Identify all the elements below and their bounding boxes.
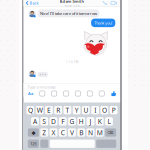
button[interactable]: F: [59, 117, 67, 125]
staticText: E: [47, 106, 51, 115]
button[interactable]: Stickers: [63, 90, 69, 97]
staticText: Y: [75, 106, 79, 115]
staticText: ⌫: [108, 130, 114, 135]
button[interactable]: C: [59, 128, 67, 137]
button[interactable]: D: [50, 117, 57, 125]
staticText: Q: [28, 106, 33, 115]
button[interactable]: Audio: [86, 90, 93, 97]
staticText: H: [79, 117, 84, 126]
staticText: Nice! I'll take care of it tomorrow: [40, 11, 97, 16]
staticText: K: [98, 117, 102, 126]
button[interactable]: W: [36, 106, 43, 114]
button[interactable]: M: [96, 128, 104, 137]
staticText: Aa: [28, 91, 33, 96]
staticText: P: [112, 106, 116, 115]
staticText: Adam Smith: [59, 0, 84, 4]
staticText: R: [56, 106, 60, 115]
button[interactable]: Camera: [39, 90, 46, 97]
staticText: 1:14 PM: [66, 60, 78, 64]
staticText: U: [83, 106, 88, 115]
staticText: M: [97, 128, 103, 137]
staticText: F: [61, 117, 64, 126]
button[interactable]: [40, 140, 48, 148]
button[interactable]: P: [110, 106, 117, 114]
button[interactable]: More: [98, 90, 105, 97]
button[interactable]: G: [68, 117, 76, 125]
button[interactable]: U: [82, 106, 90, 114]
staticText: S: [42, 117, 46, 126]
staticText: ◆: [31, 129, 35, 136]
staticText: N: [88, 128, 93, 137]
staticText: B: [79, 128, 83, 137]
staticText: V: [70, 128, 74, 137]
button[interactable]: K: [96, 117, 104, 125]
button[interactable]: O: [100, 106, 108, 114]
button[interactable]: 123: [28, 140, 39, 148]
staticText: D: [51, 117, 56, 126]
staticText: L: [107, 117, 110, 126]
button[interactable]: N: [87, 128, 94, 137]
button[interactable]: Y: [73, 106, 80, 114]
button[interactable]: Z: [40, 128, 48, 137]
button[interactable]: V: [68, 128, 76, 137]
staticText: Type a message: [27, 84, 55, 89]
staticText: Thank you!: [94, 20, 112, 25]
button[interactable]: T: [63, 106, 71, 114]
staticText: G: [69, 117, 74, 126]
button[interactable]: [50, 140, 95, 148]
button[interactable]: E: [45, 106, 53, 114]
staticText: Z: [42, 128, 46, 137]
button[interactable]: J: [87, 117, 94, 125]
button[interactable]: Q: [26, 106, 34, 114]
button[interactable]: S: [40, 117, 48, 125]
button[interactable]: B: [77, 128, 85, 137]
staticText: X: [51, 128, 55, 137]
staticText: Active now: [64, 4, 79, 7]
button[interactable]: I: [91, 106, 99, 114]
staticText: T: [65, 106, 69, 115]
staticText: 123: [30, 141, 36, 146]
button[interactable]: Call: [102, 0, 108, 6]
staticText: A: [33, 117, 37, 126]
button[interactable]: Like: [110, 90, 117, 97]
button[interactable]: Photos: [51, 90, 57, 97]
button[interactable]: A: [31, 117, 39, 125]
staticText: I: [94, 106, 96, 115]
staticText: W: [37, 106, 43, 115]
staticText: O: [102, 106, 107, 115]
button[interactable]: H: [77, 117, 85, 125]
button[interactable]: FaceTime: [111, 0, 117, 6]
button[interactable]: ⌫: [105, 128, 116, 137]
button[interactable]: Aa: [27, 90, 34, 97]
button[interactable]: Back: [23, 0, 45, 6]
button[interactable]: GIF: [75, 90, 81, 97]
staticText: Back: [30, 0, 39, 6]
button[interactable]: R: [54, 106, 62, 114]
button[interactable]: L: [105, 117, 113, 125]
button[interactable]: X: [50, 128, 57, 137]
staticText: C: [61, 128, 65, 137]
staticText: J: [89, 117, 91, 126]
button[interactable]: ◆: [28, 128, 39, 137]
